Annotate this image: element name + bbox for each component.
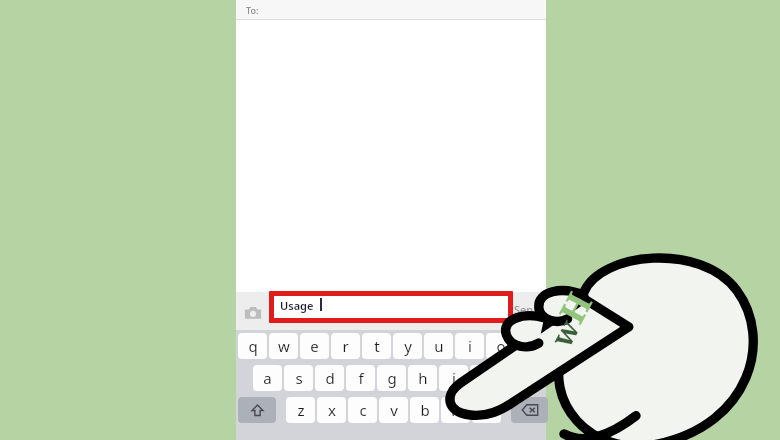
staticText: j — [452, 368, 456, 388]
button[interactable]: Shift — [238, 397, 276, 423]
staticText: c — [359, 400, 367, 420]
button[interactable]: v — [379, 397, 408, 423]
staticText: H — [548, 284, 602, 331]
button[interactable]: h — [408, 365, 437, 391]
button[interactable]: e — [300, 333, 329, 359]
button[interactable]: l — [501, 365, 530, 391]
staticText: To: — [246, 4, 259, 16]
staticText: u — [434, 336, 444, 356]
button[interactable]: Delete — [511, 397, 548, 423]
staticText: m — [479, 400, 494, 420]
staticText: w — [278, 336, 290, 356]
staticText: p — [527, 336, 537, 356]
button[interactable]: u — [424, 333, 453, 359]
staticText: f — [358, 368, 364, 388]
button[interactable]: i — [455, 333, 484, 359]
button[interactable]: b — [410, 397, 439, 423]
staticText: a — [263, 368, 272, 388]
staticText: h — [418, 368, 428, 388]
staticText: y — [404, 336, 412, 356]
staticText: d — [325, 368, 335, 388]
button[interactable] — [270, 298, 510, 323]
staticText: k — [480, 368, 489, 388]
button[interactable]: m — [472, 397, 501, 423]
button[interactable]: z — [286, 397, 315, 423]
button[interactable]: t — [362, 333, 391, 359]
staticText: x — [328, 400, 336, 420]
button[interactable]: n — [441, 397, 470, 423]
button[interactable]: w — [269, 333, 298, 359]
button[interactable]: q — [238, 333, 267, 359]
staticText: v — [390, 400, 398, 420]
staticText: o — [496, 336, 506, 356]
button[interactable]: f — [346, 365, 375, 391]
button[interactable]: Camera — [242, 302, 264, 324]
button[interactable]: y — [393, 333, 422, 359]
staticText: Send — [514, 302, 541, 317]
staticText: s — [295, 368, 303, 388]
button[interactable]: a — [253, 365, 282, 391]
button[interactable]: j — [439, 365, 468, 391]
staticText: g — [387, 368, 397, 388]
button[interactable]: s — [284, 365, 313, 391]
staticText: w — [540, 311, 589, 354]
button[interactable]: o — [486, 333, 515, 359]
staticText: i — [468, 336, 472, 356]
button[interactable]: g — [377, 365, 406, 391]
button[interactable]: p — [517, 333, 546, 359]
button[interactable]: Send — [514, 302, 541, 317]
button[interactable]: r — [331, 333, 360, 359]
button[interactable]: c — [348, 397, 377, 423]
staticText: z — [297, 400, 305, 420]
staticText: b — [420, 400, 430, 420]
button[interactable]: To: — [236, 0, 546, 19]
staticText: q — [248, 336, 258, 356]
staticText: t — [374, 336, 380, 356]
button[interactable]: k — [470, 365, 499, 391]
button[interactable]: d — [315, 365, 344, 391]
staticText: e — [310, 336, 319, 356]
staticText: Usage — [280, 298, 314, 313]
staticText: r — [342, 336, 349, 356]
button[interactable]: x — [317, 397, 346, 423]
staticText: n — [451, 400, 461, 420]
